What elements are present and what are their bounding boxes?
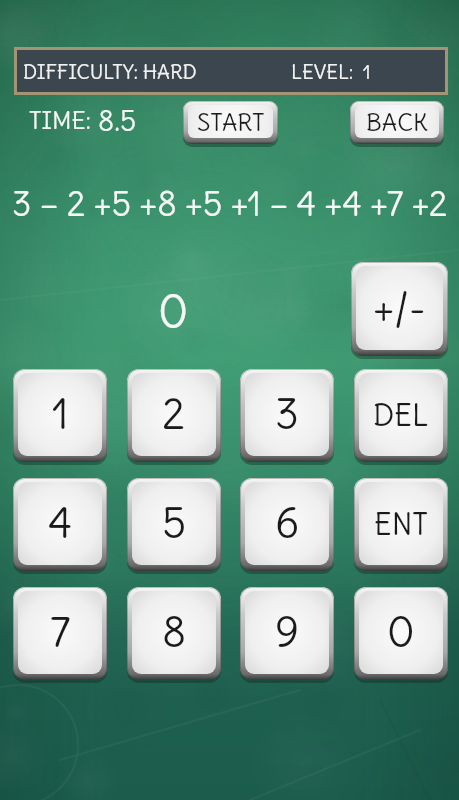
staticText: START <box>197 107 265 137</box>
button[interactable]: ENT <box>354 478 448 571</box>
button[interactable]: 9 <box>240 587 334 680</box>
staticText: DEL <box>373 396 429 434</box>
button[interactable]: 1 <box>13 369 107 462</box>
staticText: 3 <box>275 388 299 441</box>
staticText: 7 <box>50 606 71 659</box>
button[interactable]: 2 <box>127 369 221 462</box>
staticText: 9 <box>275 606 300 659</box>
staticText: TIME: <box>29 105 92 135</box>
staticText: 3 – 2 +5 +8 +5 +1 – 4 +4 +7 +2 <box>12 182 448 225</box>
button[interactable]: DEL <box>354 369 448 462</box>
staticText: ENT <box>374 505 429 543</box>
button[interactable]: 0 <box>354 587 448 680</box>
staticText: 2 <box>162 388 186 441</box>
button[interactable]: BACK <box>350 101 444 144</box>
button[interactable]: 6 <box>240 478 334 571</box>
button[interactable]: 4 <box>13 478 107 571</box>
button[interactable]: +/- <box>351 262 448 356</box>
button[interactable]: 3 <box>240 369 334 462</box>
staticText: DIFFICULTY: HARD <box>23 59 197 84</box>
staticText: 6 <box>275 497 300 550</box>
staticText: 0 <box>387 606 415 659</box>
button[interactable]: 8 <box>127 587 221 680</box>
staticText: 0 <box>158 283 189 339</box>
staticText: 8 <box>162 606 187 659</box>
staticText: 5 <box>162 497 187 550</box>
button[interactable]: 5 <box>127 478 221 571</box>
button[interactable]: START <box>183 101 278 144</box>
staticText: 8.5 <box>98 103 137 138</box>
button[interactable]: 7 <box>13 587 107 680</box>
staticText: BACK <box>366 107 428 137</box>
staticText: LEVEL: 1 <box>291 59 371 84</box>
staticText: 4 <box>48 497 73 550</box>
staticText: +/- <box>373 283 426 333</box>
staticText: 1 <box>52 388 69 441</box>
